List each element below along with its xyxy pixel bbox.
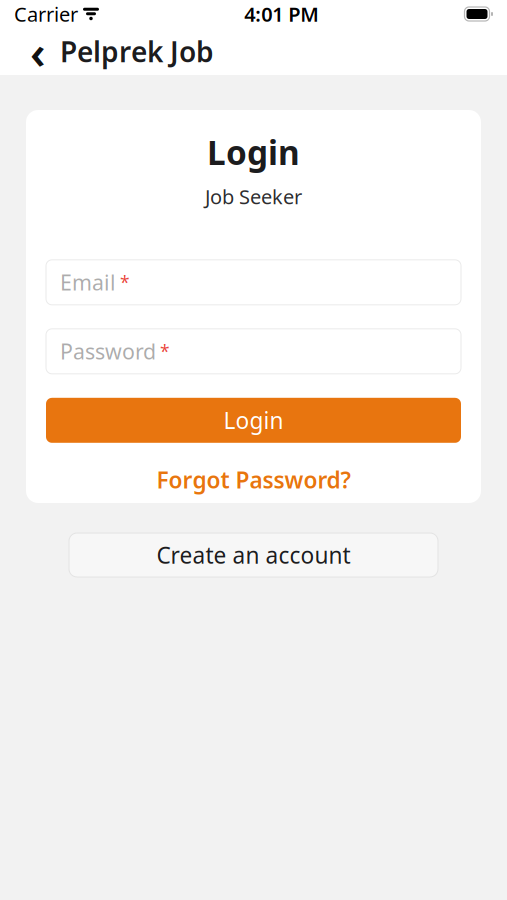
staticText: Password — [60, 337, 156, 365]
staticText: Job Seeker — [205, 183, 302, 210]
staticText: Pelprek Job — [60, 33, 214, 70]
staticText: Email — [60, 268, 116, 296]
button[interactable]: Login — [46, 398, 461, 443]
staticText: 4:01 PM — [244, 1, 319, 27]
button[interactable]: Create an account — [69, 533, 438, 577]
staticText: Login — [223, 405, 283, 435]
staticText: Forgot Password? — [156, 465, 350, 495]
staticText: * — [160, 340, 170, 363]
staticText: Carrier — [14, 1, 78, 27]
button[interactable]: Back — [16, 28, 60, 75]
staticText: Create an account — [156, 540, 350, 570]
staticText: * — [120, 271, 130, 294]
staticText: ‹ — [30, 21, 46, 82]
staticText: Login — [207, 130, 300, 174]
button[interactable]: Forgot Password? — [46, 465, 461, 495]
